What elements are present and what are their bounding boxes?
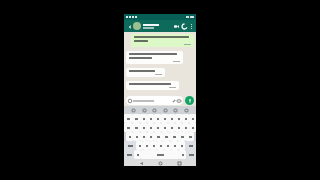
button[interactable] [150,141,157,150]
button[interactable]: More options [188,23,194,29]
button[interactable] [175,114,182,123]
button[interactable] [170,132,178,141]
button[interactable]: Back [126,23,133,30]
button[interactable] [133,132,140,141]
button[interactable]: Keyboard tool 2 [142,108,147,113]
button[interactable] [186,150,196,159]
button[interactable] [185,141,196,150]
button[interactable] [161,114,168,123]
button[interactable]: Voice call [180,22,188,30]
button[interactable]: Keyboard tool 5 [173,108,178,113]
button[interactable] [164,141,171,150]
button[interactable] [126,132,133,141]
button[interactable]: Attach [126,96,183,105]
button[interactable]: Contact photo [133,22,141,30]
button[interactable] [189,123,196,132]
button[interactable]: Back [139,161,143,165]
button[interactable]: Attach [172,99,176,103]
button[interactable] [126,51,183,64]
button[interactable]: Video call [172,22,180,30]
button[interactable] [124,114,132,123]
button[interactable] [162,132,170,141]
button[interactable] [132,114,140,123]
button[interactable] [161,123,168,132]
button[interactable] [134,150,141,159]
button[interactable]: Recents [177,161,181,165]
button[interactable] [175,123,182,132]
button[interactable] [141,150,179,159]
button[interactable] [140,123,147,132]
button[interactable] [131,34,194,47]
button[interactable]: Keyboard tool 6 [184,108,189,113]
button[interactable] [179,150,186,159]
button[interactable]: Send voice message [185,96,194,105]
button[interactable]: Camera [177,99,181,103]
button[interactable] [124,123,132,132]
button[interactable] [168,123,175,132]
button[interactable] [178,132,186,141]
button[interactable] [143,141,150,150]
button[interactable] [154,123,161,132]
button[interactable] [147,123,154,132]
button[interactable] [157,141,164,150]
button[interactable] [140,114,147,123]
button[interactable] [186,132,194,141]
button[interactable] [154,114,161,123]
button[interactable] [147,114,154,123]
button[interactable]: Keyboard tool 1 [131,108,136,113]
button[interactable] [168,114,175,123]
button[interactable]: Home [158,161,162,165]
button[interactable] [182,123,189,132]
button[interactable] [140,132,147,141]
button[interactable] [126,68,165,77]
button[interactable] [126,81,179,90]
button[interactable] [124,150,134,159]
button[interactable] [136,141,143,150]
button[interactable] [189,114,196,123]
button[interactable] [178,141,185,150]
button[interactable]: Keyboard tool 4 [163,108,168,113]
button[interactable] [182,114,189,123]
button[interactable] [132,123,140,132]
button[interactable] [147,132,154,141]
button[interactable] [171,141,178,150]
button[interactable] [154,132,162,141]
button[interactable]: Keyboard tool 3 [152,108,157,113]
button[interactable] [143,24,172,29]
button[interactable] [124,141,136,150]
